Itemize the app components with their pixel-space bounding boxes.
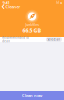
staticText: 66.5 GB	[22, 27, 41, 34]
button[interactable]: Back	[0, 4, 22, 10]
staticText: lıl ◗	[57, 1, 62, 4]
staticText: Recommended to clean	[2, 36, 29, 43]
button[interactable]: Select all	[46, 37, 62, 42]
staticText: Clean now	[22, 93, 42, 98]
staticText: 9:41	[2, 0, 9, 5]
button[interactable]: Clean now	[0, 91, 64, 100]
staticText: Junk files	[25, 23, 38, 27]
staticText: Cleaner	[6, 4, 21, 9]
staticText: Select all	[47, 38, 60, 41]
